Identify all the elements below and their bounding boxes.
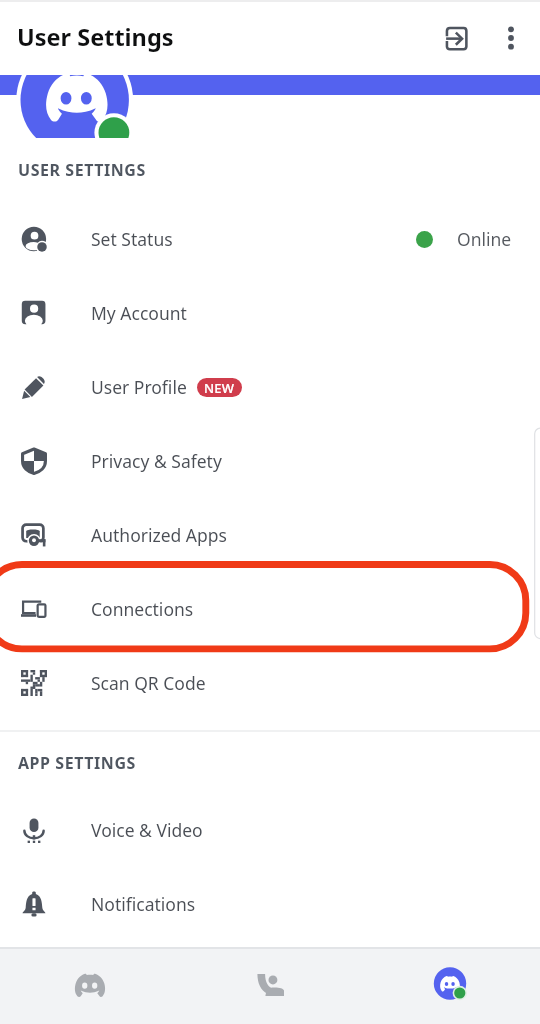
- staticText: Authorized Apps: [91, 523, 227, 547]
- staticText: Set Status: [91, 227, 173, 251]
- button[interactable]: You: [360, 949, 540, 1020]
- button[interactable]: Servers: [0, 949, 180, 1020]
- button[interactable]: Set Status: [0, 202, 540, 276]
- staticText: My Account: [91, 301, 187, 325]
- button[interactable]: More options: [487, 14, 535, 62]
- button[interactable]: Scan QR Code: [0, 646, 540, 720]
- button[interactable]: User Profile: [0, 350, 540, 424]
- staticText: Voice & Video: [91, 818, 203, 842]
- button[interactable]: Voice & Video: [0, 793, 540, 867]
- button[interactable]: Connections: [0, 572, 540, 646]
- staticText: User Profile: [91, 375, 187, 399]
- staticText: USER SETTINGS: [18, 159, 146, 181]
- button[interactable]: My Account: [0, 276, 540, 350]
- button[interactable]: Authorized Apps: [0, 498, 540, 572]
- button[interactable]: Log in: [430, 14, 478, 62]
- staticText: Connections: [91, 597, 194, 621]
- staticText: APP SETTINGS: [18, 752, 136, 774]
- button[interactable]: Notifications: [0, 867, 540, 941]
- staticText: User Settings: [17, 21, 174, 53]
- button[interactable]: Friends: [180, 949, 360, 1020]
- staticText: NEW: [204, 379, 235, 397]
- staticText: Notifications: [91, 892, 196, 916]
- staticText: Privacy & Safety: [91, 449, 222, 473]
- button[interactable]: Privacy & Safety: [0, 424, 540, 498]
- staticText: Online: [457, 227, 512, 251]
- staticText: Scan QR Code: [91, 671, 206, 695]
